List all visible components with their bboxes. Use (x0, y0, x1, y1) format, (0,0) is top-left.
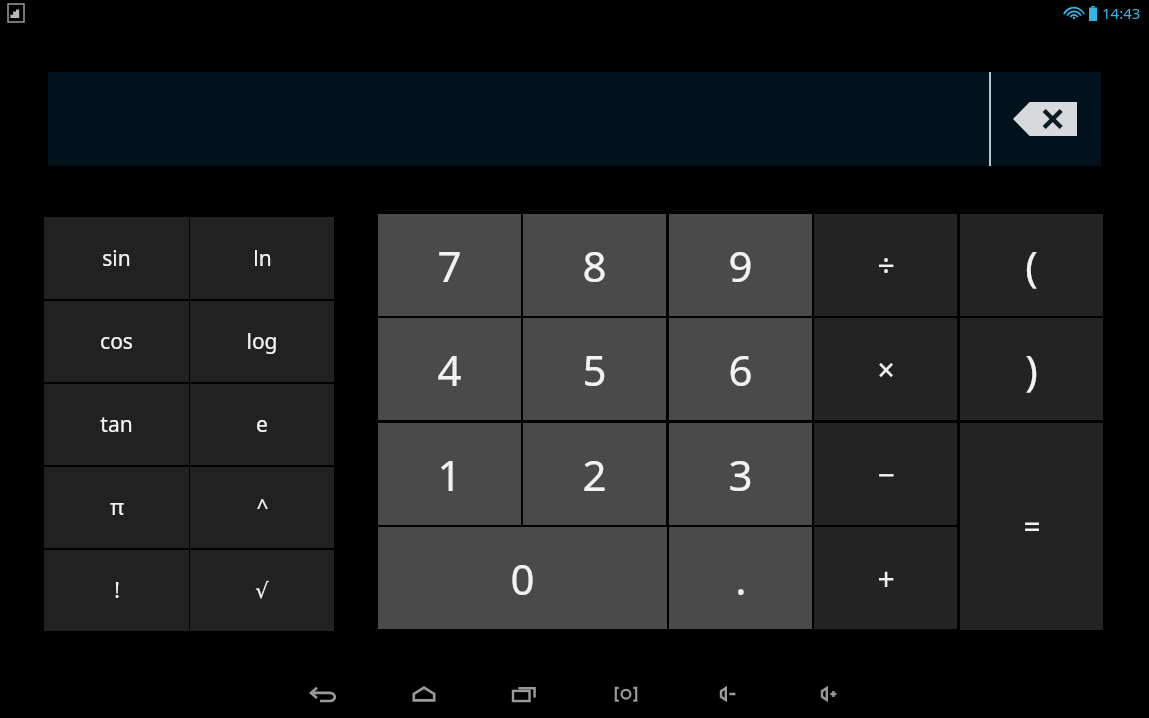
button[interactable]: ( (960, 214, 1103, 316)
button[interactable]: Home (373, 670, 474, 718)
button[interactable]: sin (44, 217, 189, 299)
button[interactable]: = (960, 423, 1103, 630)
staticText: sin (102, 244, 131, 273)
button[interactable]: + (814, 527, 957, 629)
staticText: 2 (582, 446, 607, 503)
button[interactable]: e (190, 384, 334, 465)
staticText: √ (255, 579, 269, 603)
staticText: 1 (437, 446, 462, 503)
staticText: ! (114, 576, 120, 605)
staticText: π (110, 493, 124, 522)
button[interactable]: Back (272, 670, 373, 718)
button[interactable]: Backspace (1009, 99, 1081, 139)
button[interactable]: . (669, 527, 812, 629)
button[interactable]: − (814, 423, 957, 525)
staticText: e (256, 410, 268, 439)
button[interactable]: Volume down (676, 670, 777, 718)
staticText: log (246, 327, 278, 356)
button[interactable]: π (44, 467, 189, 548)
button[interactable]: 5 (523, 318, 666, 420)
staticText: 5 (582, 341, 607, 398)
staticText: = (1023, 506, 1041, 547)
button[interactable]: 2 (523, 423, 666, 525)
button[interactable]: 0 (378, 527, 667, 629)
button[interactable]: 4 (378, 318, 521, 420)
button[interactable]: 7 (378, 214, 521, 316)
button[interactable]: ^ (190, 467, 334, 548)
button[interactable]: √ (190, 550, 334, 631)
button[interactable]: Volume up (777, 670, 878, 718)
staticText: 3 (728, 446, 753, 503)
button[interactable]: cos (44, 301, 189, 382)
staticText: tan (100, 410, 133, 439)
button[interactable]: 6 (669, 318, 812, 420)
staticText: × (877, 349, 895, 390)
staticText: ) (1025, 341, 1038, 398)
staticText: − (877, 454, 895, 495)
button[interactable]: ! (44, 550, 189, 631)
staticText: cos (100, 327, 133, 356)
button[interactable]: log (190, 301, 334, 382)
staticText: 8 (582, 237, 607, 294)
staticText: ^ (256, 493, 269, 522)
button[interactable]: 3 (669, 423, 812, 525)
staticText: 14:43 (1102, 3, 1141, 23)
button[interactable]: ) (960, 318, 1103, 420)
staticText: 7 (437, 237, 462, 294)
button[interactable]: ÷ (814, 214, 957, 316)
staticText: . (735, 550, 747, 607)
button[interactable]: Recent apps (474, 670, 575, 718)
button[interactable]: tan (44, 384, 189, 465)
button[interactable]: ln (190, 217, 334, 299)
staticText: ( (1025, 237, 1038, 294)
staticText: ln (253, 244, 272, 273)
button[interactable]: Screenshot (575, 670, 676, 718)
button[interactable]: 9 (669, 214, 812, 316)
staticText: + (877, 558, 895, 599)
staticText: ÷ (877, 245, 895, 286)
staticText: 4 (437, 341, 462, 398)
button[interactable]: × (814, 318, 957, 420)
staticText: 9 (728, 237, 753, 294)
button[interactable]: 8 (523, 214, 666, 316)
staticText: 0 (510, 550, 535, 607)
staticText: 6 (728, 341, 753, 398)
button[interactable]: 1 (378, 423, 521, 525)
